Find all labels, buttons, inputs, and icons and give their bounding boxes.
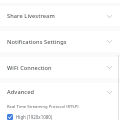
staticText: Share Livestream	[7, 12, 105, 20]
staticText: Advanced	[7, 88, 105, 96]
button[interactable]: WiFi Connection	[0, 57, 120, 78]
staticText: High (1920x1080)	[16, 114, 52, 120]
button[interactable]: High (1920x1080)	[0, 113, 120, 120]
staticText: WiFi Connection	[7, 64, 105, 72]
button[interactable]: Share Livestream	[0, 6, 120, 26]
button[interactable]: Notifications Settings	[0, 31, 120, 52]
staticText: Real Time Streaming Protocol (RTSP)	[7, 104, 79, 110]
button[interactable]: Advanced	[0, 83, 120, 101]
staticText: Notifications Settings	[7, 38, 105, 46]
